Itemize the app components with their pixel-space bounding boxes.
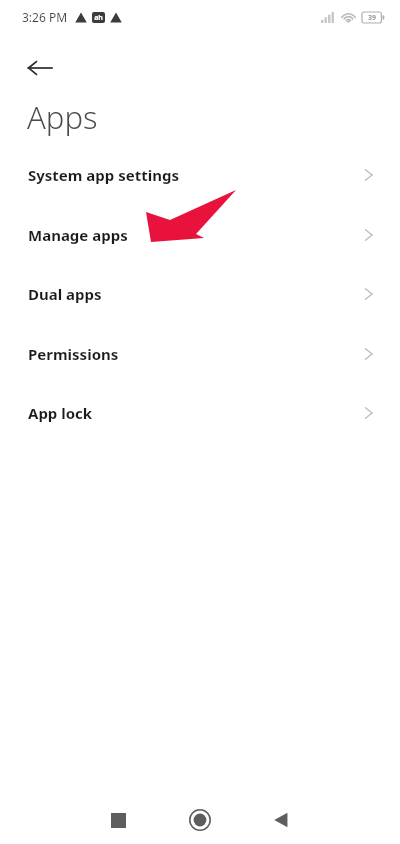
- staticText: System app settings: [28, 165, 179, 185]
- staticText: 3:26 PM: [22, 9, 68, 25]
- staticText: Permissions: [28, 344, 119, 364]
- button[interactable]: Dual apps: [0, 270, 400, 318]
- button[interactable]: App lock: [0, 389, 400, 437]
- staticText: Dual apps: [28, 284, 102, 304]
- staticText: App lock: [28, 403, 93, 423]
- staticText: Manage apps: [28, 225, 128, 245]
- button[interactable]: Manage apps: [0, 211, 400, 259]
- button[interactable]: Back: [257, 796, 305, 844]
- staticText: 39: [368, 13, 377, 23]
- button[interactable]: System app settings: [0, 151, 400, 199]
- button[interactable]: Recent apps: [94, 796, 142, 844]
- button[interactable]: Home: [176, 796, 224, 844]
- staticText: ah: [94, 13, 103, 23]
- staticText: Apps: [27, 96, 98, 138]
- button[interactable]: Back: [16, 44, 64, 92]
- button[interactable]: Permissions: [0, 330, 400, 378]
